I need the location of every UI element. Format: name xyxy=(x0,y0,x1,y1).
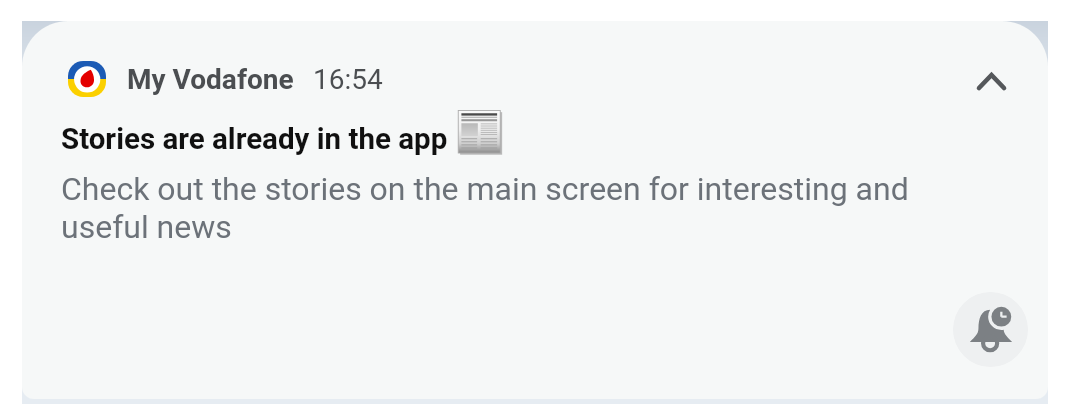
staticText: My Vodafone xyxy=(127,63,294,96)
staticText: 16:54 xyxy=(313,63,383,96)
staticText: Stories are already in the app xyxy=(61,120,448,156)
staticText: Check out the stories on the main screen… xyxy=(61,170,931,246)
button[interactable]: Snooze xyxy=(953,292,1028,367)
other: My Vodafone app icon xyxy=(68,61,106,97)
button[interactable]: My Vodafone app icon xyxy=(22,21,1048,399)
button[interactable]: Collapse notification xyxy=(976,63,1048,127)
